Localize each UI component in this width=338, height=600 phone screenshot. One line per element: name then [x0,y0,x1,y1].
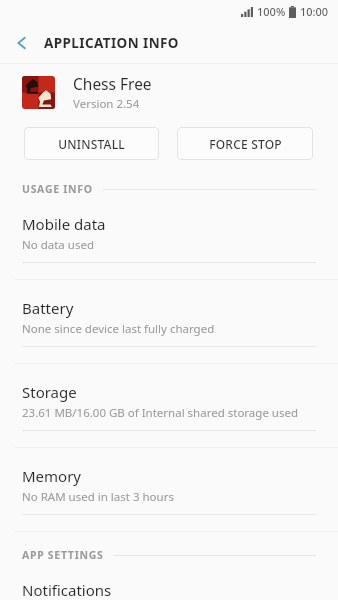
staticText: 100% [257,4,286,19]
staticText: 23.61 MB/16.00 GB of Internal shared sto… [22,405,299,421]
staticText: No data used [22,237,94,253]
staticText: UNINSTALL [58,136,125,152]
button[interactable]: Navigate up [0,22,44,63]
staticText: APPLICATION INFO [44,34,179,52]
staticText: Version 2.54 [73,96,140,112]
staticText: Storage [22,382,77,402]
button[interactable]: Memory [0,448,338,532]
staticText: USAGE INFO [22,182,93,196]
button[interactable]: Notifications [0,562,338,600]
staticText: APP SETTINGS [22,548,104,562]
staticText: No RAM used in last 3 hours [22,489,174,505]
staticText: Notifications [22,580,112,600]
staticText: Chess Free [73,73,152,94]
staticText: None since device last fully charged [22,321,215,337]
button[interactable]: Battery [0,280,338,364]
button[interactable]: Storage [0,364,338,448]
button[interactable]: Mobile data [0,196,338,280]
staticText: FORCE STOP [209,136,282,152]
button[interactable]: UNINSTALL [24,127,159,160]
staticText: 10:00 [300,4,329,19]
button[interactable]: FORCE STOP [177,127,313,160]
staticText: Mobile data [22,214,106,234]
staticText: Memory [22,466,82,486]
staticText: Battery [22,298,74,318]
